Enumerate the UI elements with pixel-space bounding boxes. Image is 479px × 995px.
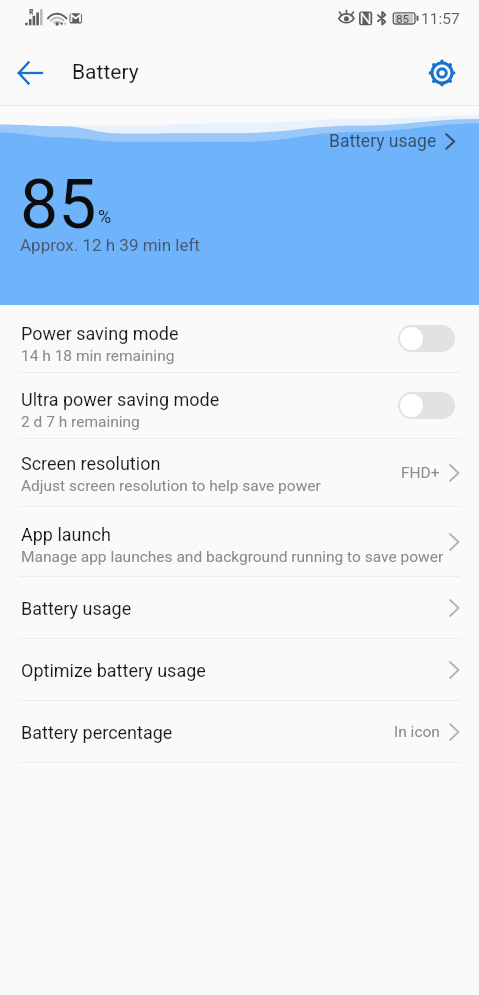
button[interactable]: Screen resolution (0, 439, 479, 506)
button[interactable]: Battery usage (329, 131, 456, 152)
staticText: Battery (72, 60, 139, 85)
staticText: Optimize battery usage (21, 660, 206, 681)
staticText: Battery usage (21, 598, 132, 619)
staticText: 85 (396, 12, 409, 25)
button[interactable]: Ultra power saving mode (0, 373, 479, 438)
button[interactable]: Battery usage (0, 577, 479, 638)
staticText: FHD+ (401, 464, 440, 482)
staticText: Battery usage (329, 131, 437, 152)
button[interactable]: Back (0, 40, 60, 105)
button[interactable]: Settings (419, 50, 465, 96)
staticText: Manage app launches and background runni… (21, 548, 444, 566)
staticText: Ultra power saving mode (21, 389, 220, 410)
staticText: 11:57 (421, 10, 460, 28)
button[interactable]: App launch (0, 507, 479, 576)
staticText: Approx. 12 h 39 min left (20, 235, 200, 255)
staticText: 14 h 18 min remaining (21, 347, 175, 365)
button[interactable]: Battery percentage (0, 701, 479, 762)
button[interactable]: Optimize battery usage (0, 639, 479, 700)
staticText: 85 (20, 165, 97, 245)
button[interactable]: Power saving mode (0, 305, 479, 372)
staticText: 2 d 7 h remaining (21, 413, 140, 431)
staticText: Battery percentage (21, 722, 173, 743)
staticText: In icon (394, 723, 440, 741)
staticText: App launch (21, 524, 111, 545)
staticText: Power saving mode (21, 323, 179, 344)
staticText: Screen resolution (21, 453, 161, 474)
staticText: % (98, 206, 112, 227)
staticText: Adjust screen resolution to help save po… (21, 477, 321, 495)
